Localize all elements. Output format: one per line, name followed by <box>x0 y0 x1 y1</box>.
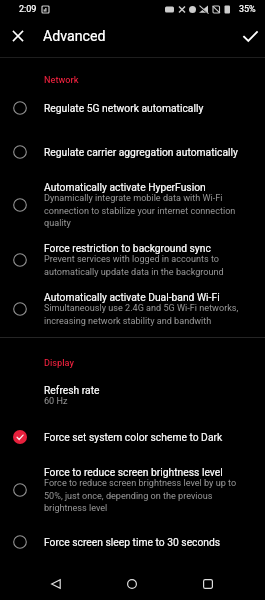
staticText: Simultaneously use 2.4G and 5G Wi-Fi net… <box>44 303 240 326</box>
button[interactable]: Automatically activate HyperFusion <box>0 174 265 235</box>
staticText: Force to reduce screen brightness level <box>44 466 223 478</box>
button[interactable]: Automatically activate Dual-band Wi-Fi <box>0 284 265 333</box>
button[interactable]: Regulate carrier aggregation automatical… <box>0 130 265 174</box>
staticText: Display <box>44 357 74 368</box>
staticText: Advanced <box>43 28 106 45</box>
staticText: Regulate carrier aggregation automatical… <box>44 146 238 158</box>
staticText: Force restriction to background sync <box>44 242 211 254</box>
staticText: Automatically activate Dual-band Wi-Fi <box>44 291 220 303</box>
staticText: Regulate 5G network automatically <box>44 102 204 114</box>
button[interactable]: Force set system color scheme to Dark <box>0 415 265 459</box>
staticText: 60 Hz <box>44 396 68 407</box>
button[interactable]: Regulate 5G network automatically <box>0 86 265 130</box>
staticText: Force set system color scheme to Dark <box>44 431 223 443</box>
button[interactable]: Recents <box>175 567 241 600</box>
staticText: Automatically activate HyperFusion <box>44 181 206 193</box>
button[interactable]: Refresh rate <box>0 369 265 415</box>
button[interactable]: Force screen sleep time to 30 seconds <box>0 520 265 564</box>
staticText: Force screen sleep time to 30 seconds <box>44 536 221 548</box>
button[interactable]: Force restriction to background sync <box>0 235 265 284</box>
staticText: Prevent services with logged in accounts… <box>44 254 240 277</box>
staticText: Dynamically integrate mobile data with W… <box>44 193 240 228</box>
staticText: Network <box>44 74 79 85</box>
button[interactable]: Home <box>89 567 175 600</box>
button[interactable]: Confirm <box>236 22 264 50</box>
staticText: Force to reduce screen brightness level … <box>44 478 240 513</box>
button[interactable]: Back <box>22 567 89 600</box>
button[interactable]: Close <box>4 22 32 50</box>
staticText: 2:09 <box>19 4 37 15</box>
button[interactable]: Force to reduce screen brightness level <box>0 459 265 520</box>
staticText: 35% <box>239 4 256 15</box>
staticText: Refresh rate <box>44 384 100 396</box>
